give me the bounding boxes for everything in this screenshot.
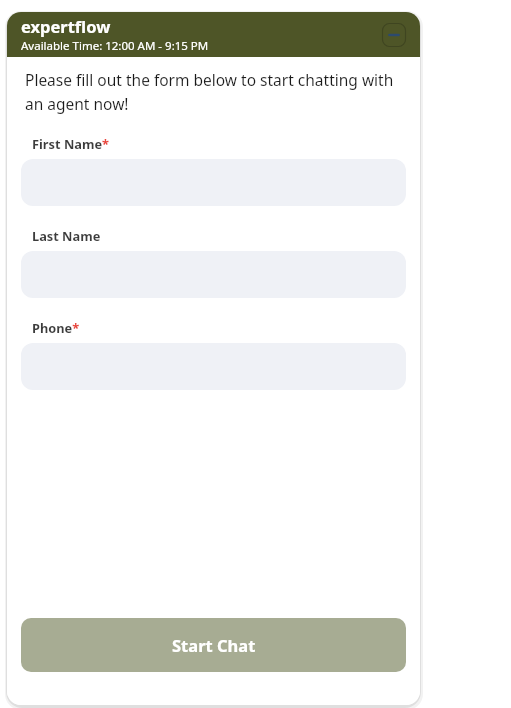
button[interactable]: Start Chat — [21, 618, 406, 672]
button[interactable]: Last Name — [21, 227, 406, 298]
button[interactable]: First Name* — [21, 135, 406, 206]
staticText: Last Name — [32, 227, 101, 244]
button[interactable]: Phone* — [21, 319, 406, 390]
staticText: First Name* — [32, 135, 109, 152]
staticText: expertflow — [21, 15, 111, 37]
staticText: Available Time: 12:00 AM - 9:15 PM — [21, 38, 209, 54]
staticText: Phone* — [32, 319, 80, 336]
button[interactable]: Minimize chat — [380, 21, 408, 49]
staticText: Start Chat — [172, 634, 256, 656]
staticText: Please fill out the form below to start … — [25, 69, 404, 114]
